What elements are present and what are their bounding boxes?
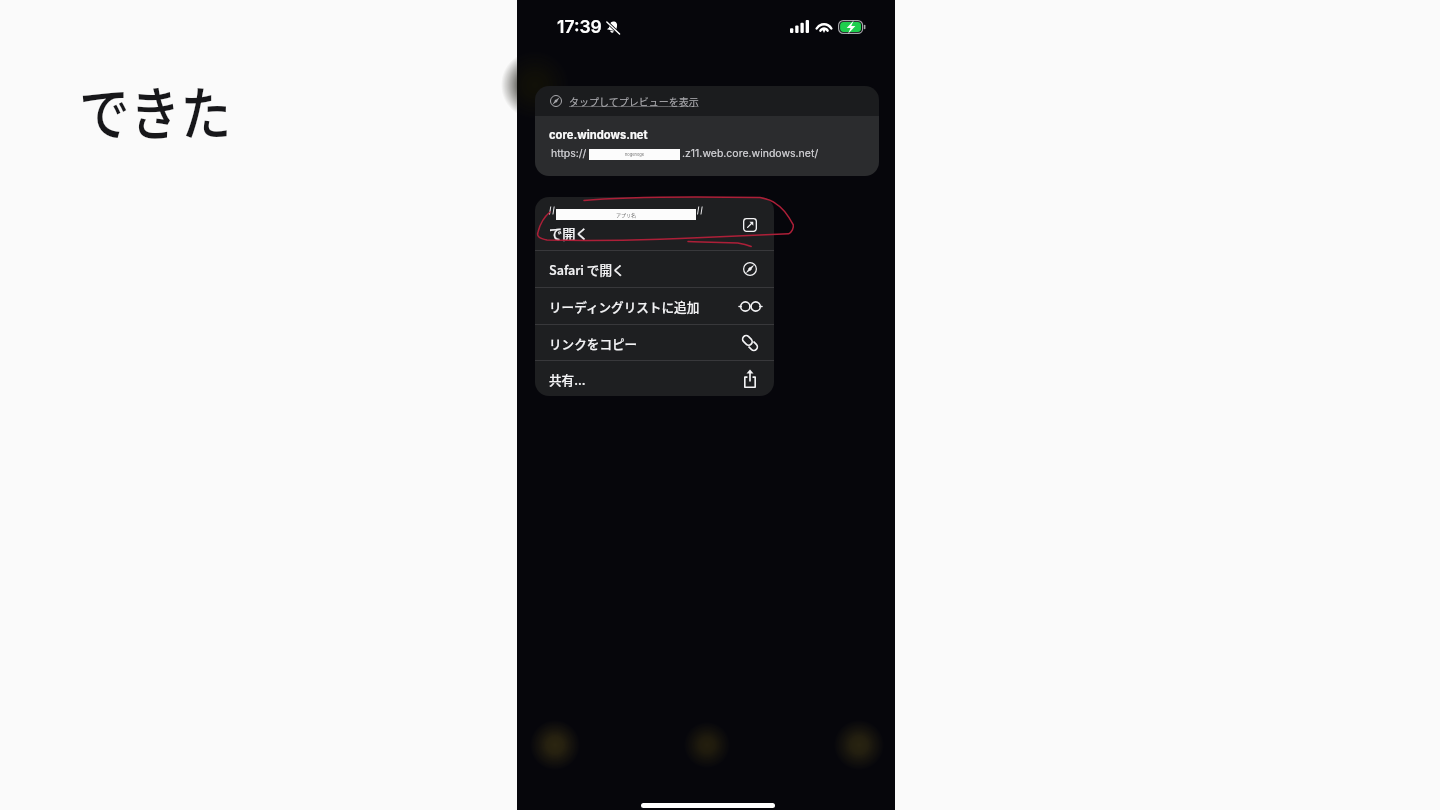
staticText: core.windows.net [549, 128, 648, 142]
button[interactable]: リンクをコピー [535, 325, 774, 360]
staticText: hogehoge [625, 152, 645, 157]
staticText: Safari で開く [549, 260, 738, 278]
staticText: リーディングリストに追加 [549, 297, 738, 315]
staticText: できた [79, 67, 231, 151]
button[interactable]: タップしてプレビューを表示 [535, 86, 879, 116]
button[interactable]: core.windows.net [535, 116, 879, 176]
staticText: リンクをコピー [549, 334, 738, 352]
staticText: https:// [551, 147, 587, 160]
staticText: で開く [549, 224, 589, 243]
staticText: アプリ名 [616, 211, 637, 218]
button[interactable]: リーディングリストに追加 [535, 288, 774, 324]
button[interactable]: 共有... [535, 361, 774, 396]
staticText: 17:39 [557, 16, 602, 37]
other: Wi-Fi [816, 20, 832, 33]
other: Open in app [743, 218, 757, 232]
other: Cellular signal [790, 20, 809, 33]
staticText: タップしてプレビューを表示 [569, 94, 699, 108]
other: Battery charging [838, 20, 866, 34]
staticText: .z11.web.core.windows.net/ [682, 147, 819, 160]
staticText: 共有... [549, 370, 738, 388]
button[interactable]: Safari で開く [535, 251, 774, 287]
other: Silent mode [606, 20, 620, 34]
button[interactable]: アプリ名 [535, 197, 774, 250]
